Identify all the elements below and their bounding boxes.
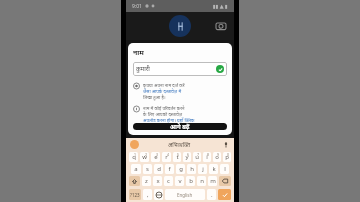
button[interactable]: App logo — [169, 15, 191, 37]
staticText: k — [212, 165, 216, 173]
staticText: ▮▮ ▲ ▮ — [213, 3, 228, 10]
staticText: 9:01 — [132, 3, 142, 10]
staticText: z — [145, 177, 148, 185]
staticText: r — [165, 153, 168, 161]
button[interactable]: Space — [165, 189, 205, 200]
staticText: 5 — [177, 152, 180, 157]
button[interactable]: p — [223, 152, 231, 162]
button[interactable]: z — [142, 176, 151, 186]
button[interactable]: आगे बढ़ें — [133, 123, 227, 130]
staticText: i — [206, 153, 208, 161]
staticText: h — [190, 165, 194, 173]
staticText: 3 — [156, 152, 159, 157]
button[interactable]: c — [164, 176, 173, 186]
staticText: कुमारी — [136, 65, 216, 73]
button[interactable]: w — [140, 152, 149, 162]
staticText: नाम — [133, 48, 144, 58]
staticText: ?123 — [130, 192, 140, 198]
button[interactable]: k — [209, 164, 218, 174]
staticText: l — [224, 165, 226, 173]
button[interactable]: a — [131, 164, 141, 174]
staticText: j — [202, 165, 204, 173]
button[interactable]: v — [175, 176, 184, 186]
staticText: के लिए आपको दस्तावेज़ — [143, 111, 183, 117]
staticText: u — [195, 153, 199, 161]
staticText: 7 — [197, 152, 200, 157]
button[interactable]: o — [213, 152, 221, 162]
button[interactable]: Enter — [218, 189, 231, 200]
staticText: 9 — [217, 152, 220, 157]
button[interactable]: b — [186, 176, 195, 186]
button[interactable]: Change language — [154, 189, 163, 200]
button[interactable]: h — [187, 164, 196, 174]
staticText: c — [167, 177, 170, 185]
button[interactable]: e — [151, 152, 160, 162]
staticText: a — [134, 165, 138, 173]
staticText: , — [147, 191, 149, 199]
staticText: 6 — [187, 152, 190, 157]
button[interactable]: u — [193, 152, 201, 162]
button[interactable]: l — [220, 164, 229, 174]
button[interactable]: Camera — [214, 19, 228, 33]
button[interactable]: Backspace — [219, 176, 231, 186]
staticText: n — [200, 177, 204, 185]
staticText: अपलोड करना होगा। यहाँ क्लिक — [143, 117, 195, 123]
staticText: कृपया अपना नाम दर्ज करें — [143, 82, 185, 88]
button[interactable]: Period — [207, 189, 216, 200]
button[interactable]: f — [165, 164, 174, 174]
staticText: b — [189, 177, 193, 185]
staticText: 8 — [207, 152, 210, 157]
button[interactable]: Numbers and symbols — [129, 189, 141, 200]
button[interactable]: y — [183, 152, 191, 162]
staticText: f — [168, 165, 171, 173]
staticText: m — [210, 177, 216, 185]
button[interactable]: s — [143, 164, 152, 174]
staticText: q — [132, 153, 136, 161]
button[interactable]: n — [197, 176, 206, 186]
button[interactable]: कुमारी — [133, 62, 227, 76]
staticText: English — [177, 192, 193, 198]
button[interactable]: Emoji — [143, 189, 152, 200]
button[interactable]: d — [154, 164, 163, 174]
staticText: लिखा हुआ है। — [143, 94, 166, 100]
button[interactable]: j — [198, 164, 207, 174]
staticText: t — [176, 153, 179, 161]
staticText: 0 — [227, 152, 230, 157]
button[interactable]: i — [203, 152, 211, 162]
staticText: g — [179, 165, 183, 173]
button[interactable]: g — [176, 164, 185, 174]
staticText: s — [146, 165, 149, 173]
staticText: v — [178, 177, 182, 185]
button[interactable]: q — [129, 152, 138, 162]
staticText: 1 — [134, 152, 137, 157]
staticText: 2 — [145, 152, 148, 157]
staticText: x — [156, 177, 160, 185]
staticText: y — [185, 153, 189, 161]
staticText: अभिव्यक्ति — [168, 141, 191, 148]
button[interactable]: Keyboard menu — [130, 140, 139, 149]
button[interactable]: x — [153, 176, 162, 186]
staticText: . — [211, 191, 213, 199]
staticText: o — [215, 153, 219, 161]
staticText: e — [154, 153, 158, 161]
button[interactable]: Voice input — [221, 140, 230, 149]
staticText: 4 — [167, 152, 170, 157]
staticText: w — [142, 153, 147, 161]
staticText: जैसा आपके दस्तावेज़ में — [143, 88, 182, 94]
button[interactable]: t — [173, 152, 181, 162]
staticText: d — [157, 165, 161, 173]
staticText: p — [225, 153, 229, 161]
staticText: आगे बढ़ें — [170, 123, 190, 130]
button[interactable]: r — [162, 152, 171, 162]
button[interactable]: Shift — [129, 176, 140, 186]
staticText: नाम में कोई परिवर्तन करने — [143, 105, 185, 111]
button[interactable]: m — [208, 176, 217, 186]
